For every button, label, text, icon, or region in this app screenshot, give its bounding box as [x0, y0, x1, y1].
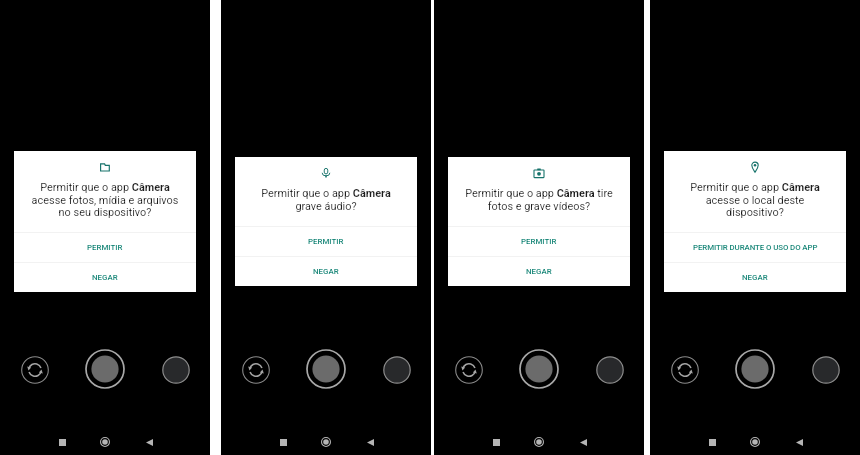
button[interactable]: Back: [139, 432, 159, 452]
button[interactable]: Recent apps: [486, 432, 506, 452]
staticText: NEGAR: [742, 273, 768, 282]
button[interactable]: Recent apps: [273, 432, 293, 452]
button[interactable]: Take photo: [306, 349, 346, 389]
staticText: Permitir que o app Câmera acesse fotos, …: [19, 181, 191, 218]
staticText: Permitir que o app Câmera acesse o local…: [669, 181, 841, 218]
button[interactable]: Switch camera: [242, 356, 270, 384]
button[interactable]: PERMITIR: [235, 227, 417, 256]
button[interactable]: Home: [316, 432, 336, 452]
button[interactable]: NEGAR: [14, 263, 196, 292]
button[interactable]: Home: [95, 432, 115, 452]
button[interactable]: Back: [789, 432, 809, 452]
button[interactable]: PERMITIR: [448, 227, 630, 256]
button[interactable]: Gallery: [162, 356, 190, 384]
button[interactable]: Home: [529, 432, 549, 452]
staticText: Permitir que o app Câmera tire fotos e g…: [453, 187, 625, 212]
button[interactable]: Recent apps: [52, 432, 72, 452]
button[interactable]: Gallery: [596, 356, 624, 384]
staticText: PERMITIR: [87, 243, 123, 252]
button[interactable]: Back: [573, 432, 593, 452]
button[interactable]: PERMITIR DURANTE O USO DO APP: [664, 233, 846, 262]
button[interactable]: Take photo: [519, 349, 559, 389]
button[interactable]: NEGAR: [235, 257, 417, 286]
button[interactable]: Take photo: [85, 349, 125, 389]
button[interactable]: NEGAR: [664, 263, 846, 292]
button[interactable]: PERMITIR: [14, 233, 196, 262]
staticText: NEGAR: [92, 273, 118, 282]
button[interactable]: Switch camera: [671, 356, 699, 384]
button[interactable]: Switch camera: [455, 356, 483, 384]
button[interactable]: NEGAR: [448, 257, 630, 286]
button[interactable]: Home: [745, 432, 765, 452]
button[interactable]: Gallery: [812, 356, 840, 384]
staticText: PERMITIR: [308, 237, 344, 246]
button[interactable]: Take photo: [735, 349, 775, 389]
button[interactable]: Gallery: [383, 356, 411, 384]
button[interactable]: Switch camera: [21, 356, 49, 384]
staticText: NEGAR: [313, 267, 339, 276]
staticText: PERMITIR: [521, 237, 557, 246]
button[interactable]: Recent apps: [702, 432, 722, 452]
staticText: NEGAR: [526, 267, 552, 276]
staticText: Permitir que o app Câmera grave áudio?: [240, 187, 412, 212]
button[interactable]: Back: [360, 432, 380, 452]
staticText: PERMITIR DURANTE O USO DO APP: [693, 243, 818, 252]
